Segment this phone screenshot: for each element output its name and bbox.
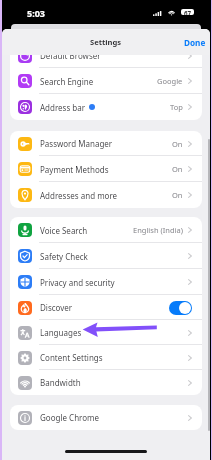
staticText: Discover <box>40 302 73 313</box>
button[interactable]: Search Engine <box>10 68 202 94</box>
staticText: 67 <box>184 9 192 15</box>
staticText: Settings <box>90 37 122 47</box>
button[interactable]: Address bar <box>10 94 202 120</box>
staticText: Default Browser <box>40 50 101 61</box>
staticText: Bandwidth <box>40 377 81 388</box>
button[interactable]: Languages <box>10 320 202 345</box>
staticText: On <box>172 164 183 174</box>
button[interactable]: Bandwidth <box>10 370 202 395</box>
button[interactable]: Google Chrome <box>10 405 202 430</box>
staticText: Google <box>157 76 183 86</box>
button[interactable]: Privacy and security <box>10 269 202 295</box>
staticText: Search Engine <box>40 76 94 87</box>
staticText: On <box>172 139 183 149</box>
staticText: Address bar <box>40 102 86 113</box>
staticText: Voice Search <box>40 225 88 236</box>
button[interactable]: Done <box>174 37 210 48</box>
staticText: On <box>172 190 183 200</box>
staticText: Safety Check <box>40 251 88 262</box>
staticText: Languages <box>40 327 82 338</box>
button[interactable]: Addresses and more <box>10 182 202 208</box>
button[interactable]: Payment Methods <box>10 156 202 182</box>
button[interactable]: Content Settings <box>10 345 202 370</box>
staticText: Password Manager <box>40 138 113 149</box>
button[interactable]: Discover <box>10 295 202 320</box>
staticText: Privacy and security <box>40 277 115 288</box>
staticText: 5:03 <box>27 7 45 19</box>
staticText: English (India) <box>133 225 183 235</box>
staticText: Content Settings <box>40 352 103 363</box>
button[interactable]: Safety Check <box>10 243 202 269</box>
staticText: Payment Methods <box>40 164 109 175</box>
staticText: Addresses and more <box>40 190 118 201</box>
staticText: Top <box>170 102 183 112</box>
staticText: Google Chrome <box>40 412 100 423</box>
staticText: Done <box>184 37 206 48</box>
button[interactable]: Default Browser <box>10 43 202 68</box>
button[interactable]: Password Manager <box>10 131 202 156</box>
button[interactable]: Voice Search <box>10 217 202 243</box>
